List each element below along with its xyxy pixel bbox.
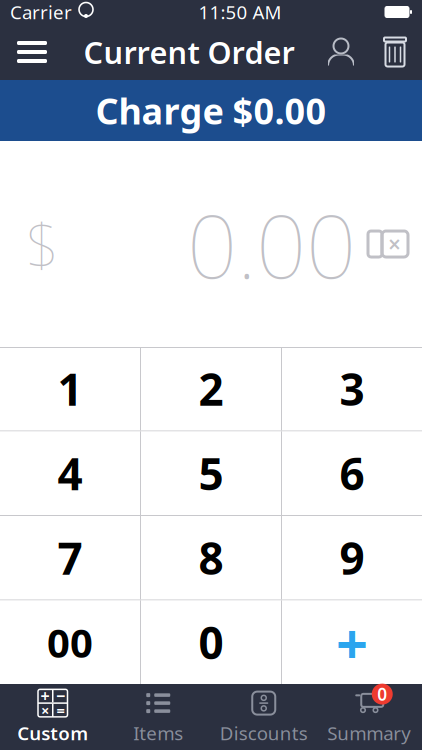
staticText: Carrier — [10, 0, 72, 24]
staticText: + — [336, 605, 368, 679]
staticText: 3 — [339, 359, 364, 418]
button[interactable]: + — [0, 684, 105, 750]
button[interactable]: 8 — [141, 516, 281, 599]
staticText: Discounts — [220, 721, 308, 745]
staticText: $ — [26, 205, 59, 283]
button[interactable]: Customer — [314, 24, 368, 80]
button[interactable]: 7 — [0, 516, 140, 599]
staticText: 00 — [47, 616, 93, 669]
staticText: Summary — [327, 721, 411, 745]
button[interactable]: Clear order — [368, 24, 422, 80]
staticText: 0.00 — [187, 186, 356, 302]
staticText: × — [388, 229, 401, 259]
staticText: + — [40, 685, 49, 706]
button[interactable]: Discounts — [211, 684, 316, 750]
button[interactable]: 0 — [141, 600, 281, 684]
staticText: 0 — [198, 613, 223, 671]
button[interactable]: 3 — [282, 347, 422, 430]
staticText: 6 — [339, 444, 364, 502]
staticText: Items — [133, 721, 183, 745]
staticText: Charge $0.00 — [95, 87, 326, 134]
button[interactable]: 9 — [282, 516, 422, 599]
button[interactable]: 5 — [141, 431, 281, 515]
staticText: 8 — [198, 528, 223, 587]
staticText: 9 — [339, 528, 364, 587]
button[interactable]: 2 — [141, 347, 281, 430]
staticText: Current Order — [83, 32, 294, 72]
button[interactable]: Charge $0.00 — [0, 80, 422, 141]
staticText: 4 — [57, 444, 82, 502]
staticText: = — [56, 701, 64, 720]
staticText: 11:50 AM — [198, 0, 281, 24]
staticText: 7 — [57, 528, 82, 587]
button[interactable]: 4 — [0, 431, 140, 515]
button[interactable]: 6 — [282, 431, 422, 515]
staticText: 0 — [377, 683, 387, 706]
staticText: Custom — [17, 721, 88, 745]
button[interactable]: Delete — [356, 209, 422, 279]
button[interactable]: Menu — [0, 24, 64, 80]
staticText: 5 — [198, 444, 223, 502]
staticText: 1 — [57, 359, 82, 418]
button[interactable]: 1 — [0, 347, 140, 430]
button[interactable]: 00 — [0, 600, 140, 684]
staticText: 2 — [198, 359, 223, 418]
staticText: − — [56, 685, 65, 706]
staticText: × — [41, 701, 49, 720]
button[interactable]: Items — [105, 684, 211, 750]
button[interactable]: 0 — [316, 684, 422, 750]
button[interactable]: + — [282, 600, 422, 684]
